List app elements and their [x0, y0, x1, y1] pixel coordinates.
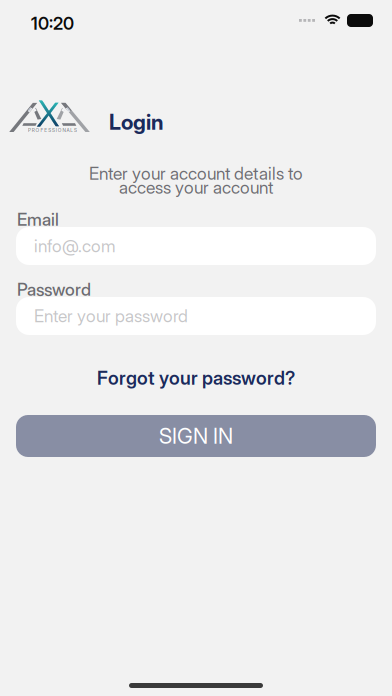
staticText: 10:20 — [31, 13, 74, 34]
staticText: Enter your account details to — [89, 163, 303, 184]
staticText: info@.com — [34, 235, 116, 256]
staticText: Forgot your password? — [97, 367, 295, 389]
staticText: Email — [17, 209, 59, 230]
button[interactable]: Forgot your password? — [0, 367, 392, 389]
staticText: Enter your password — [34, 305, 188, 326]
staticText: Password — [17, 279, 91, 300]
button[interactable]: Enter your password — [16, 297, 376, 335]
staticText: access your account — [119, 177, 273, 198]
button[interactable]: info@.com — [16, 227, 376, 265]
staticText: SIGN IN — [159, 423, 233, 449]
button[interactable]: SIGN IN — [16, 415, 376, 457]
staticText: PROFESSIONALS — [28, 127, 77, 133]
staticText: Login — [109, 109, 163, 135]
